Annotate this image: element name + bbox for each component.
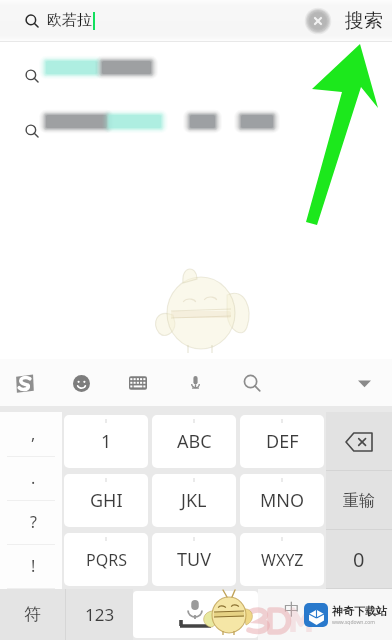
button[interactable]: Backspace (326, 412, 392, 471)
button[interactable]: Enter (325, 589, 392, 640)
button[interactable]: Collapse keyboard (348, 367, 380, 399)
button[interactable]: Space (133, 591, 258, 638)
button[interactable]: 0 (326, 530, 392, 589)
button[interactable]: 搜索 (337, 3, 391, 39)
button[interactable]: ? (0, 501, 62, 545)
button[interactable]: TUV (152, 533, 236, 586)
button[interactable]: 123 (66, 589, 133, 640)
button[interactable]: Search (238, 369, 266, 397)
staticText: 中 (284, 600, 300, 620)
staticText: 0 (353, 546, 365, 573)
staticText: 1 (101, 429, 112, 454)
staticText: ! (31, 555, 36, 577)
staticText: JKL (181, 488, 207, 513)
button[interactable]: GHI (64, 474, 148, 527)
staticText: GHI (90, 488, 123, 513)
button[interactable] (0, 103, 392, 158)
button[interactable]: WXYZ (240, 533, 324, 586)
button[interactable]: Voice input (181, 369, 209, 397)
button[interactable]: Emoji (67, 369, 95, 397)
staticText: ABC (177, 429, 212, 454)
button[interactable]: 中 (258, 589, 325, 640)
button[interactable] (0, 48, 392, 103)
button[interactable]: PQRS (64, 533, 148, 586)
staticText: 欧若拉 (47, 11, 92, 30)
staticText: . (31, 467, 36, 489)
staticText: PQRS (86, 549, 127, 571)
staticText: 重输 (343, 491, 375, 511)
button[interactable]: . (0, 457, 62, 501)
button[interactable]: 1 (64, 415, 148, 468)
button[interactable]: Keyboard layout (124, 369, 152, 397)
staticText: DEF (266, 429, 299, 454)
button[interactable]: 符 (0, 589, 65, 640)
button[interactable]: MNO (240, 474, 324, 527)
staticText: 神奇下载站 (332, 604, 387, 618)
button[interactable]: 重输 (326, 471, 392, 530)
staticText: ? (30, 511, 37, 533)
button[interactable]: Clear text (305, 8, 331, 34)
button[interactable]: , (0, 412, 62, 457)
button[interactable]: Sogou menu (10, 369, 38, 397)
button[interactable]: ! (0, 545, 62, 589)
staticText: 搜索 (345, 9, 383, 33)
button[interactable]: ABC (152, 415, 236, 468)
staticText: MNO (260, 488, 305, 513)
button[interactable]: JKL (152, 474, 236, 527)
staticText: , (31, 423, 36, 445)
staticText: 123 (85, 603, 115, 626)
staticText: WXYZ (261, 549, 304, 571)
staticText: www.sqdown.com (332, 619, 375, 626)
staticText: 符 (24, 604, 41, 625)
button[interactable]: DEF (240, 415, 324, 468)
staticText: TUV (177, 547, 211, 572)
